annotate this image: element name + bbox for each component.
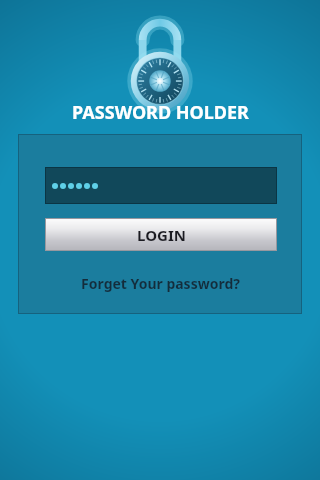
other: Padlock logo (126, 19, 194, 101)
button[interactable]: Forget Your password? (18, 270, 302, 296)
staticText: LOGIN (137, 225, 186, 245)
staticText: Forget Your password? (81, 274, 240, 293)
button[interactable] (45, 167, 277, 204)
button[interactable]: LOGIN (45, 218, 277, 251)
staticText: PASSWORD HOLDER (72, 100, 249, 125)
